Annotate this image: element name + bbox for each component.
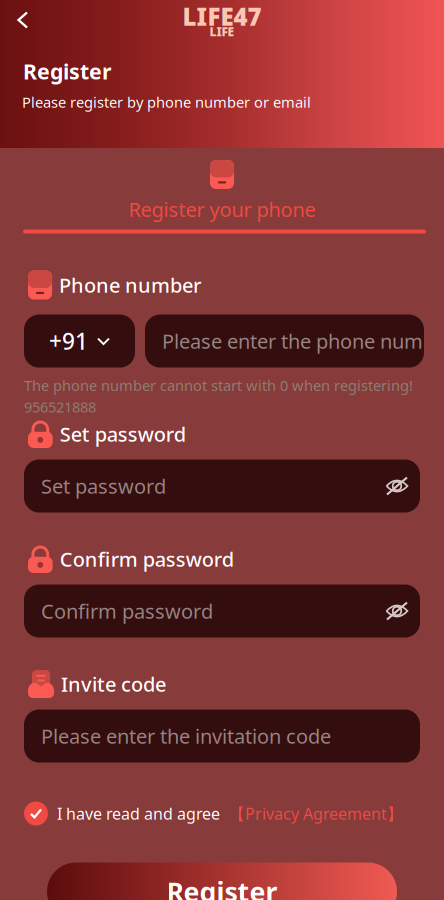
staticText: Register	[23, 57, 112, 85]
staticText: LIFE	[209, 23, 234, 39]
staticText: Confirm password	[60, 546, 234, 572]
staticText: Phone number	[59, 272, 201, 298]
staticText: The phone number cannot start with 0 whe…	[24, 376, 413, 395]
staticText: Confirm password	[41, 598, 213, 624]
button[interactable]: Show password	[377, 584, 417, 637]
staticText: Register	[166, 874, 277, 900]
staticText: 956521888	[24, 397, 96, 416]
staticText: LIFE47	[182, 1, 261, 32]
staticText: Please enter the invitation code	[41, 723, 331, 749]
button[interactable]: I have read and agree	[0, 798, 444, 828]
staticText: Please enter the phone number	[162, 328, 444, 354]
button[interactable]: Back	[0, 3, 46, 37]
staticText: I have read and agree	[57, 803, 220, 824]
button[interactable]: Show password	[377, 459, 417, 512]
staticText: Register your phone	[128, 196, 315, 223]
staticText: Set password	[41, 473, 166, 499]
button[interactable]: Register your phone	[0, 148, 444, 230]
staticText: Invite code	[61, 671, 166, 697]
staticText: Set password	[60, 421, 186, 447]
button[interactable]: +91	[24, 315, 135, 368]
staticText: 【Privacy Agreement】	[229, 803, 403, 824]
button[interactable]: Register	[0, 862, 444, 900]
staticText: Please register by phone number or email	[22, 92, 311, 112]
staticText: +91	[49, 326, 88, 356]
